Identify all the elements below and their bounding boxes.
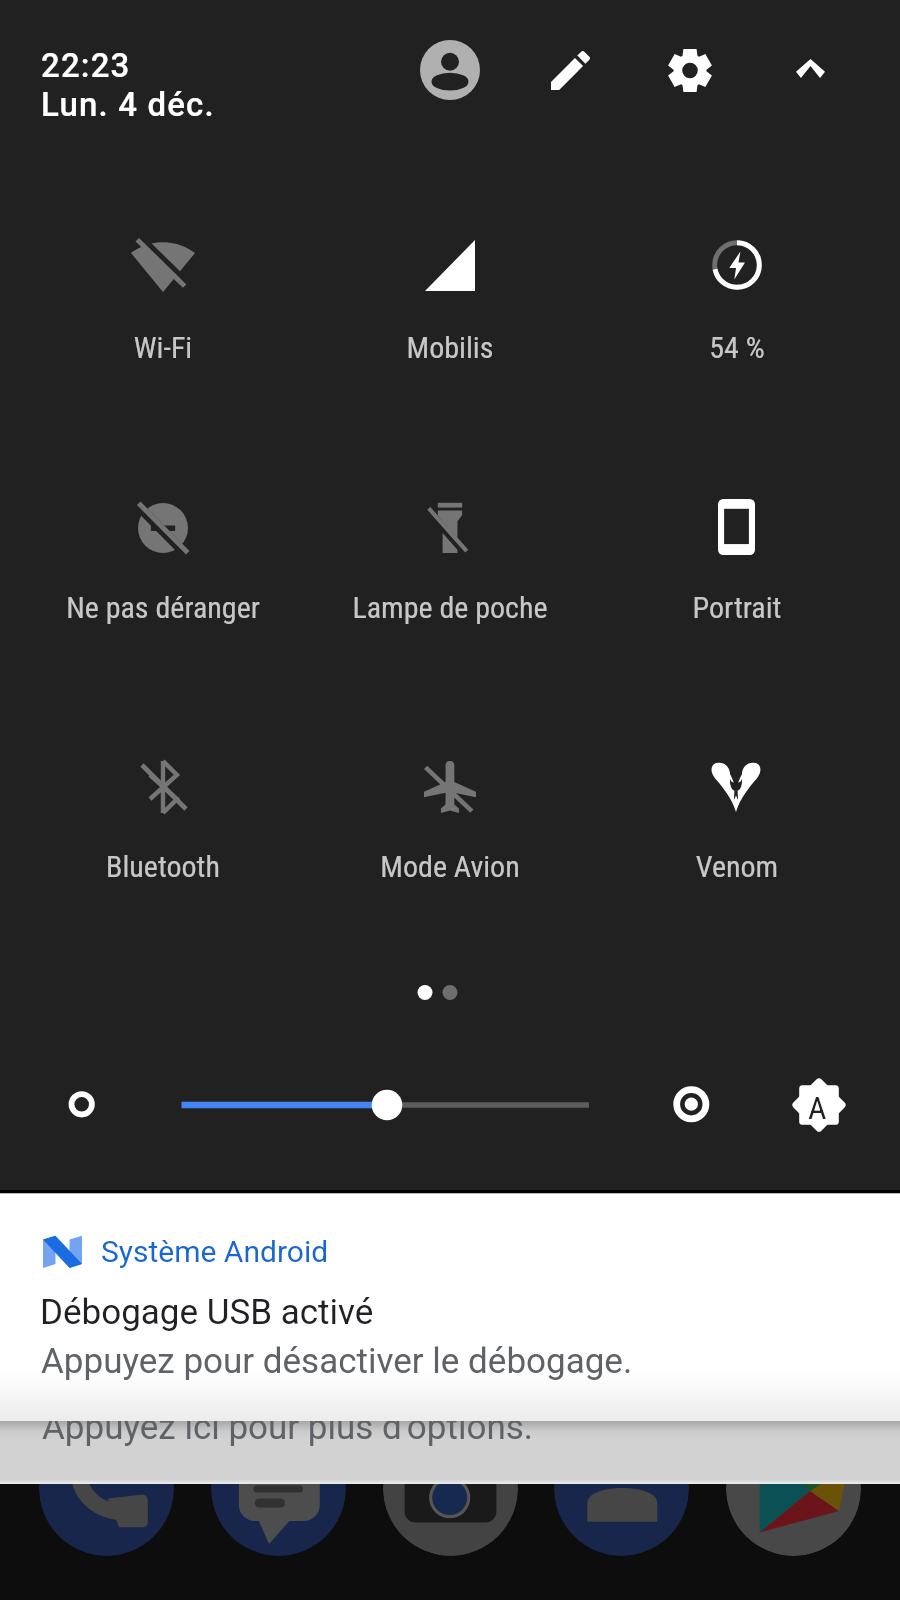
button[interactable] xyxy=(594,195,880,375)
staticText: A xyxy=(808,1089,827,1127)
button[interactable]: Navigateur xyxy=(554,1421,689,1556)
button[interactable] xyxy=(307,195,593,375)
button[interactable] xyxy=(0,1421,900,1484)
button[interactable]: Modifier xyxy=(534,34,606,106)
button[interactable]: Paramètres xyxy=(654,34,726,106)
staticText: Wi-Fi xyxy=(20,330,306,365)
button[interactable]: Système Android xyxy=(0,1193,900,1421)
button[interactable]: Luminosité minimale xyxy=(56,1079,108,1131)
staticText: Débogage USB activé xyxy=(40,1292,374,1333)
staticText: Appuyez pour désactiver le débogage. xyxy=(41,1341,633,1382)
staticText: Ne pas déranger xyxy=(20,590,306,625)
staticText: Mobilis xyxy=(307,330,593,365)
staticText: Lun. 4 déc. xyxy=(41,85,215,124)
button[interactable] xyxy=(307,458,593,638)
button[interactable] xyxy=(594,717,880,897)
button[interactable]: Play Store xyxy=(726,1421,861,1556)
staticText: Mode Avion xyxy=(307,849,593,884)
button[interactable] xyxy=(20,458,306,638)
staticText: Venom xyxy=(594,849,880,884)
button[interactable]: 22:23 xyxy=(41,46,215,124)
button[interactable]: Luminosité xyxy=(165,1079,605,1131)
staticText: Système Android xyxy=(101,1234,329,1269)
staticText: 54 % xyxy=(594,330,880,365)
staticText: Bluetooth xyxy=(20,849,306,884)
button[interactable] xyxy=(20,717,306,897)
button[interactable] xyxy=(20,195,306,375)
staticText: Portrait xyxy=(594,590,880,625)
button[interactable]: Téléphone xyxy=(39,1421,174,1556)
button[interactable] xyxy=(594,458,880,638)
staticText: Appuyez ici pour plus d'options. xyxy=(42,1407,534,1448)
button[interactable]: Luminosité maximale xyxy=(665,1078,717,1130)
staticText: Lampe de poche xyxy=(307,590,593,625)
button[interactable]: Luminosité automatique xyxy=(791,1077,847,1133)
staticText: 22:23 xyxy=(41,46,131,85)
button[interactable]: Réduire xyxy=(774,32,846,104)
button[interactable] xyxy=(307,717,593,897)
button[interactable]: Messages xyxy=(211,1421,346,1556)
button[interactable]: Utilisateur xyxy=(414,34,486,106)
button[interactable]: Appareil photo xyxy=(383,1421,518,1556)
